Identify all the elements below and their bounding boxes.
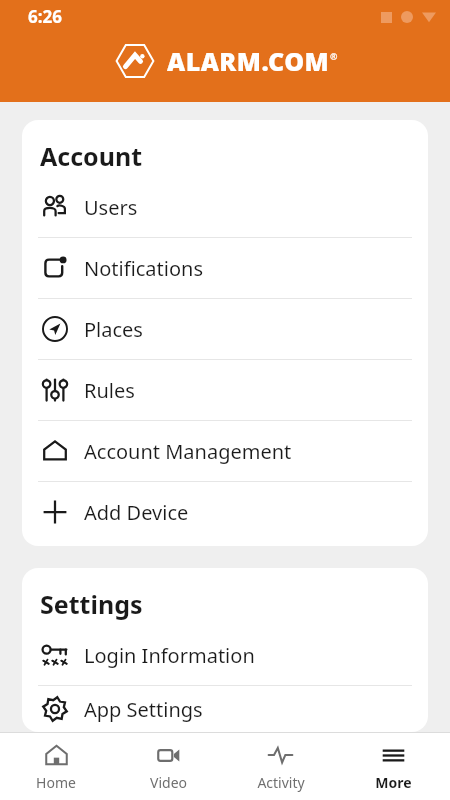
button[interactable]: Rules bbox=[22, 360, 428, 420]
staticText: Users bbox=[84, 194, 138, 221]
staticText: Activity bbox=[257, 773, 305, 792]
button[interactable]: Video bbox=[112, 733, 224, 800]
button[interactable]: Activity bbox=[224, 733, 337, 800]
staticText: Notifications bbox=[84, 255, 203, 282]
staticText: App Settings bbox=[84, 696, 203, 723]
staticText: Rules bbox=[84, 377, 135, 404]
staticText: More bbox=[375, 773, 412, 792]
button[interactable]: Places bbox=[22, 299, 428, 359]
staticText: ALARM.COM bbox=[167, 44, 330, 78]
staticText: 6:26 bbox=[28, 5, 62, 28]
button[interactable]: Login Information bbox=[22, 625, 428, 685]
button[interactable]: Add Device bbox=[22, 482, 428, 542]
button[interactable]: Home bbox=[0, 733, 112, 800]
button[interactable]: More bbox=[337, 733, 450, 800]
staticText: ® bbox=[330, 50, 338, 62]
button[interactable]: App Settings bbox=[22, 686, 428, 732]
staticText: Places bbox=[84, 316, 143, 343]
staticText: Settings bbox=[40, 587, 143, 621]
staticText: Video bbox=[150, 773, 187, 792]
staticText: Login Information bbox=[84, 642, 255, 669]
button[interactable]: Account Management bbox=[22, 421, 428, 481]
button[interactable]: Users bbox=[22, 177, 428, 237]
staticText: Account bbox=[40, 139, 143, 173]
staticText: Add Device bbox=[84, 499, 189, 526]
staticText: Home bbox=[36, 773, 76, 792]
button[interactable]: Notifications bbox=[22, 238, 428, 298]
staticText: Account Management bbox=[84, 438, 292, 465]
